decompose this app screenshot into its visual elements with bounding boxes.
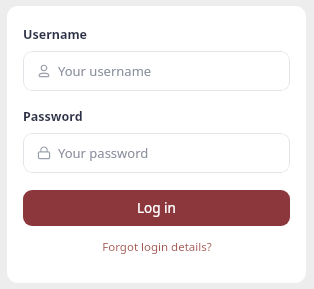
staticText: Your username	[58, 62, 152, 80]
button[interactable]: Your password	[23, 133, 290, 173]
button[interactable]: Log in	[23, 190, 290, 226]
staticText: Forgot login details?	[102, 239, 212, 255]
button[interactable]: Forgot login details?	[23, 239, 290, 255]
staticText: Password	[23, 108, 83, 125]
staticText: Your password	[58, 144, 149, 162]
staticText: Log in	[137, 199, 176, 217]
staticText: Username	[23, 26, 88, 43]
button[interactable]: Your username	[23, 51, 290, 91]
